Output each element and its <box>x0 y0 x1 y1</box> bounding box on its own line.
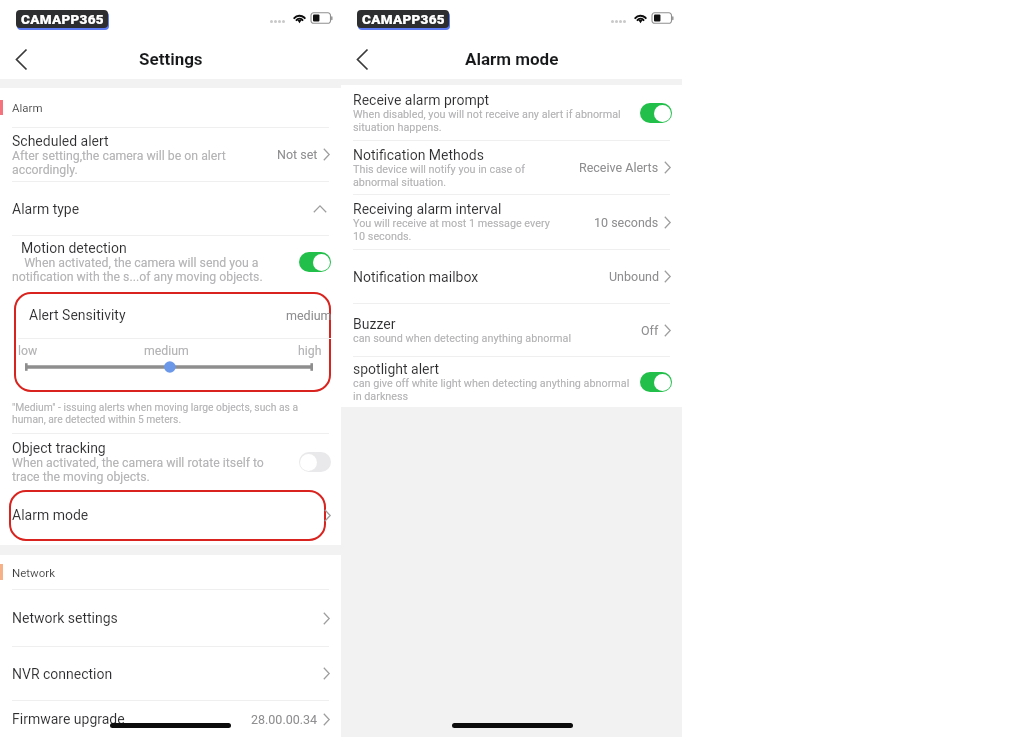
staticText: CAMAPP365 <box>21 11 104 27</box>
staticText: Alarm <box>12 101 43 114</box>
staticText: After setting,the camera will be on aler… <box>12 149 226 177</box>
button[interactable]: Scheduled alert <box>0 128 341 181</box>
staticText: can sound when detecting anything abnorm… <box>353 332 572 345</box>
staticText: You will receive at most 1 message every… <box>353 217 550 243</box>
staticText: Not set <box>277 147 318 162</box>
staticText: Notification Methods <box>353 147 484 163</box>
staticText: high <box>298 344 322 358</box>
button[interactable]: Back <box>343 40 381 78</box>
staticText: Alarm mode <box>12 507 89 523</box>
staticText: Notification mailbox <box>353 269 479 285</box>
staticText: When activated, the camera will rotate i… <box>12 456 264 484</box>
button[interactable]: Alarm type <box>0 182 341 235</box>
staticText: 10 seconds <box>594 215 659 230</box>
button[interactable]: Receive alarm prompt <box>341 85 682 140</box>
staticText: Off <box>641 323 659 338</box>
button[interactable]: Switch on <box>640 372 672 392</box>
staticText: When disabled, you will not receive any … <box>353 108 621 134</box>
button[interactable]: spotlight alert <box>341 357 682 407</box>
button[interactable]: NVR connection <box>0 647 341 700</box>
button[interactable]: Notification mailbox <box>341 250 682 303</box>
staticText: can give off white light when detecting … <box>353 377 630 403</box>
other: Alert sensitivity slider <box>25 360 313 374</box>
staticText: 28.00.00.34 <box>251 712 318 727</box>
staticText: low <box>18 344 38 358</box>
staticText: Buzzer <box>353 316 396 332</box>
staticText: Receive Alerts <box>579 160 659 175</box>
staticText: Alarm type <box>12 201 312 217</box>
staticText: "Medium" - issuing alerts when moving la… <box>12 401 299 425</box>
button[interactable]: Receiving alarm interval <box>341 195 682 249</box>
staticText: CAMAPP365 <box>362 11 445 27</box>
staticText: NVR connection <box>12 666 113 682</box>
button[interactable]: Motion detection <box>0 236 341 288</box>
staticText: Motion detection <box>21 240 127 256</box>
button[interactable]: Buzzer <box>341 304 682 356</box>
staticText: Unbound <box>609 269 659 284</box>
button[interactable]: Object tracking <box>0 434 341 490</box>
staticText: Alarm mode <box>465 49 559 69</box>
button[interactable]: Network settings <box>0 590 341 646</box>
button[interactable]: Back <box>2 40 40 78</box>
button[interactable]: Switch on <box>640 103 672 123</box>
button[interactable]: Switch off <box>299 452 331 472</box>
staticText: medium <box>286 308 332 323</box>
staticText: Receive alarm prompt <box>353 92 490 108</box>
staticText: Object tracking <box>12 440 106 456</box>
staticText: Network settings <box>12 610 118 626</box>
staticText: Receiving alarm interval <box>353 201 502 217</box>
staticText: Firmware upgrade <box>12 711 125 727</box>
staticText: Settings <box>139 49 203 69</box>
staticText: spotlight alert <box>353 361 440 377</box>
staticText: Alert Sensitivity <box>29 307 285 323</box>
button[interactable]: Switch on <box>299 252 331 272</box>
button[interactable]: Firmware upgrade <box>0 701 341 737</box>
other: Collapse <box>312 201 328 217</box>
button[interactable]: Notification Methods <box>341 141 682 194</box>
staticText: medium <box>144 344 189 358</box>
staticText: When activated, the camera will send you… <box>12 256 263 284</box>
staticText: This device will notify you in case of a… <box>353 163 525 189</box>
staticText: Scheduled alert <box>12 133 109 149</box>
button[interactable] <box>9 490 326 541</box>
staticText: Network <box>12 566 55 579</box>
